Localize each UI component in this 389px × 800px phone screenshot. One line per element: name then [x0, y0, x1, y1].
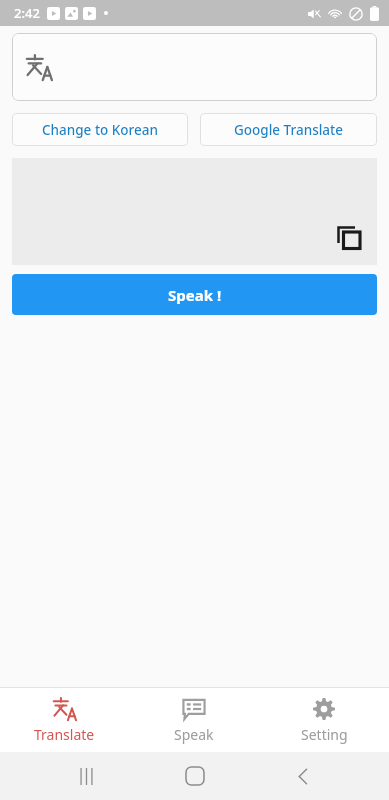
staticText: Google Translate	[234, 121, 343, 139]
staticText: Speak	[174, 725, 214, 744]
staticText: Change to Korean	[42, 121, 158, 139]
button[interactable]: Copy	[333, 221, 365, 253]
button[interactable]: Home	[173, 754, 217, 798]
button[interactable]: Recents	[64, 754, 108, 798]
button[interactable]: Text to translate	[12, 33, 377, 101]
button[interactable]: Change to Korean	[12, 113, 188, 146]
button[interactable]: Back	[281, 754, 325, 798]
button[interactable]: Google Translate	[200, 113, 377, 146]
button[interactable]: Setting	[259, 688, 389, 752]
staticText: Translate	[34, 725, 95, 744]
button[interactable]: Translate	[0, 688, 129, 752]
button[interactable]: Speak !	[12, 274, 377, 315]
staticText: 2:42	[14, 4, 40, 22]
staticText: Speak !	[168, 285, 222, 305]
button[interactable]: Speak	[129, 688, 259, 752]
staticText: Setting	[301, 725, 348, 744]
